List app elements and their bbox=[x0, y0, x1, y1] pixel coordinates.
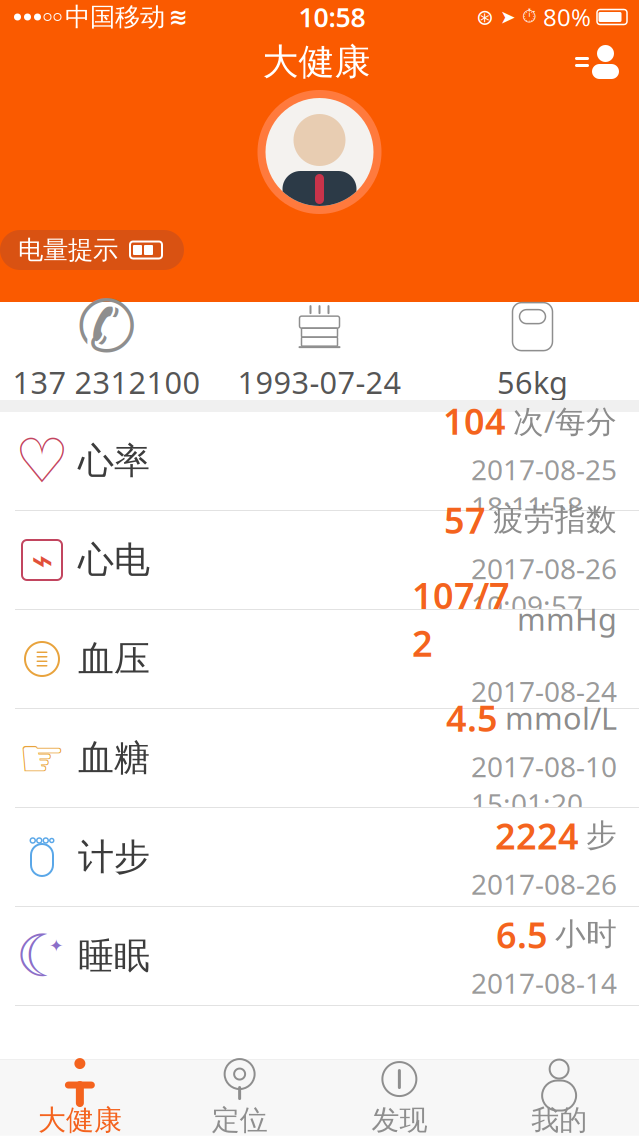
staticText: 2017-08-26 10:09:57 bbox=[471, 550, 617, 624]
button[interactable]: ⌁ bbox=[0, 511, 639, 610]
staticText: 步 bbox=[586, 817, 617, 854]
staticText: 80% bbox=[543, 1, 591, 33]
staticText: 2017-08-25 18:11:58 bbox=[471, 451, 617, 525]
staticText: ☾ bbox=[15, 923, 68, 989]
staticText: ≋ bbox=[169, 4, 188, 30]
staticText: 2017-08-26 bbox=[471, 865, 617, 902]
button[interactable]: ☾ bbox=[0, 907, 639, 1006]
staticText: 电量提示 bbox=[18, 234, 118, 265]
button[interactable]: 血压 bbox=[0, 610, 639, 709]
staticText: 107/72 bbox=[412, 571, 510, 667]
staticText: ⏱ bbox=[522, 8, 537, 26]
staticText: 定位 bbox=[212, 1103, 268, 1136]
staticText: 2017-08-14 bbox=[471, 964, 617, 1001]
staticText: 2017-08-10 15:01:20 bbox=[471, 748, 617, 822]
staticText: 睡眠 bbox=[78, 934, 150, 978]
button[interactable]: 1993-07-24 bbox=[213, 302, 426, 400]
button[interactable]: 发现 bbox=[319, 1060, 479, 1136]
button[interactable]: ☞ bbox=[0, 709, 639, 808]
staticText: 血糖 bbox=[78, 736, 150, 780]
staticText: 心率 bbox=[78, 439, 150, 483]
staticText: 57 bbox=[444, 496, 486, 544]
staticText: ☞ bbox=[18, 728, 66, 788]
button[interactable]: 计步 bbox=[0, 808, 639, 907]
button[interactable]: ♡ bbox=[0, 412, 639, 511]
staticText: 56kg bbox=[497, 362, 568, 402]
staticText: 6.5 bbox=[496, 910, 548, 958]
staticText: 次/每分 bbox=[513, 400, 617, 441]
staticText: 疲劳指数 bbox=[493, 501, 617, 539]
staticText: mmol/L bbox=[505, 697, 617, 738]
button[interactable]: 电量提示 bbox=[0, 230, 184, 270]
button[interactable]: 大健康 bbox=[0, 1060, 160, 1136]
button[interactable]: 我的 bbox=[479, 1060, 639, 1136]
staticText: 104 bbox=[443, 397, 506, 445]
staticText: ✆ bbox=[76, 286, 136, 367]
staticText: 4.5 bbox=[446, 694, 498, 742]
staticText: 计步 bbox=[78, 835, 150, 879]
staticText: 2224 bbox=[495, 811, 579, 859]
staticText: ✦ bbox=[49, 936, 64, 956]
staticText: ♡ bbox=[14, 426, 69, 496]
staticText: 血压 bbox=[78, 637, 150, 681]
staticText: 心电 bbox=[78, 538, 150, 582]
button[interactable]: 56kg bbox=[426, 302, 639, 400]
staticText: 2017-08-24 15:08:45 bbox=[471, 673, 617, 747]
staticText: 137 2312100 bbox=[12, 362, 200, 402]
staticText: 大健康 bbox=[262, 40, 370, 84]
staticText: 10:58 bbox=[298, 0, 365, 35]
staticText: 1993-07-24 bbox=[237, 362, 401, 402]
staticText: 小时 bbox=[555, 916, 617, 953]
button[interactable]: ✆ bbox=[0, 302, 213, 400]
button[interactable]: 切换用户 bbox=[573, 44, 639, 80]
staticText: ➤ bbox=[500, 6, 516, 28]
staticText: 我的 bbox=[531, 1103, 587, 1136]
staticText: 大健康 bbox=[38, 1103, 122, 1136]
button[interactable]: 定位 bbox=[160, 1060, 320, 1136]
staticText: 中国移动 bbox=[65, 1, 165, 32]
staticText: ⌁ bbox=[31, 539, 53, 581]
staticText: mmHg bbox=[517, 598, 617, 639]
staticText: 发现 bbox=[371, 1103, 427, 1136]
staticText: ⊛ bbox=[476, 5, 494, 29]
